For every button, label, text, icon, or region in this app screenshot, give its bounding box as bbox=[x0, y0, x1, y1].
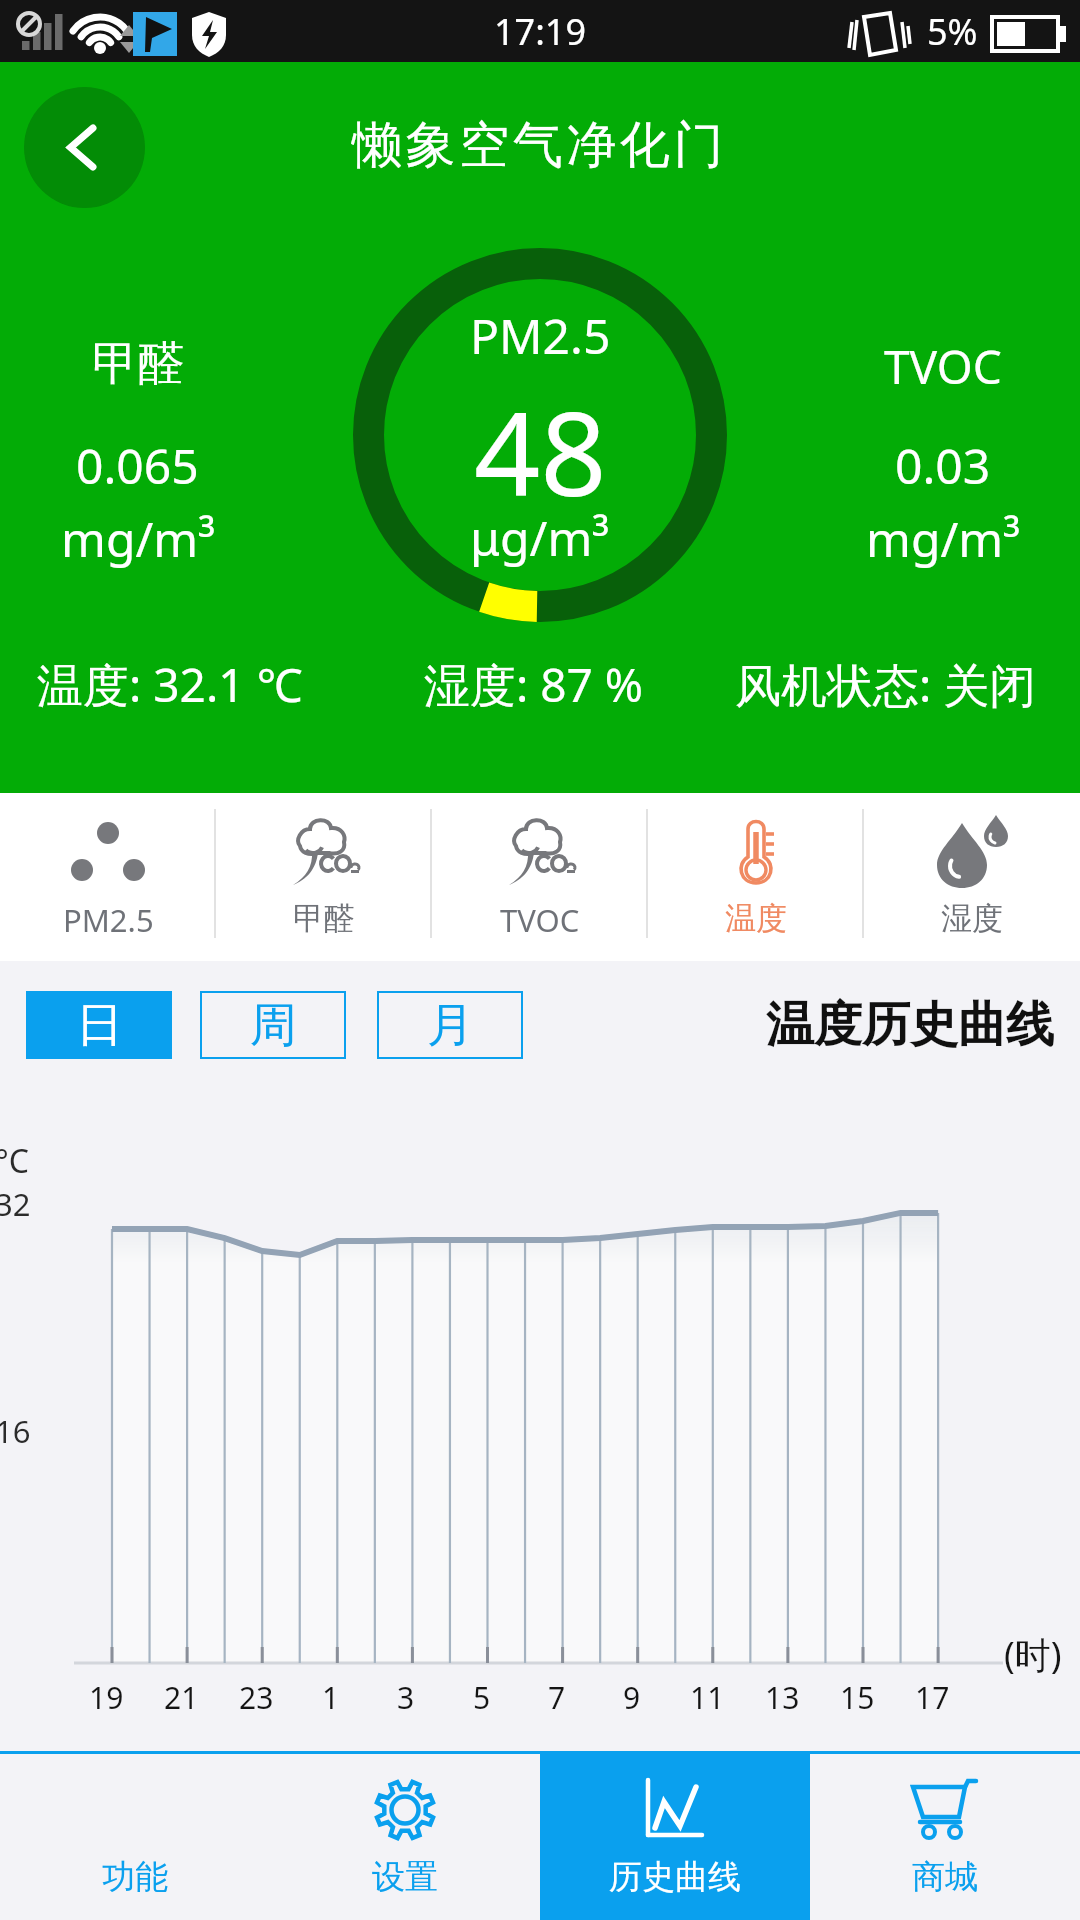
button[interactable]: 功能 bbox=[0, 1754, 270, 1920]
staticText: 16 bbox=[0, 1410, 31, 1452]
staticText: 21 bbox=[164, 1677, 199, 1718]
staticText: TVOC bbox=[884, 335, 1002, 398]
staticText: °C bbox=[0, 1139, 29, 1183]
button[interactable]: 日 bbox=[26, 991, 172, 1059]
button[interactable]: Back bbox=[24, 87, 145, 208]
staticText: PM2.5 bbox=[470, 303, 611, 368]
button[interactable]: 月 bbox=[377, 991, 523, 1059]
staticText: μg/m³ bbox=[470, 505, 610, 570]
button[interactable]: 设置 bbox=[270, 1754, 540, 1920]
staticText: 32 bbox=[0, 1183, 31, 1225]
staticText: 17:19 bbox=[494, 7, 587, 56]
staticText: 9 bbox=[623, 1677, 641, 1718]
button[interactable]: 历史曲线 bbox=[540, 1754, 810, 1920]
staticText: 5% bbox=[927, 7, 978, 56]
staticText: 甲醛 bbox=[293, 899, 355, 938]
staticText: PM2.5 bbox=[63, 899, 154, 941]
staticText: mg/m³ bbox=[61, 506, 215, 571]
staticText: 温度: 32.1 ℃ bbox=[37, 653, 303, 716]
button[interactable]: 商城 bbox=[810, 1754, 1080, 1920]
staticText: (时) bbox=[1004, 1630, 1062, 1679]
button[interactable]: PM2.5 bbox=[0, 793, 216, 961]
staticText: 日 bbox=[76, 996, 123, 1055]
staticText: 3 bbox=[397, 1677, 415, 1718]
button[interactable]: 湿度 bbox=[864, 793, 1080, 961]
staticText: 湿度 bbox=[941, 899, 1003, 938]
staticText: 15 bbox=[840, 1677, 875, 1718]
staticText: 7 bbox=[548, 1677, 566, 1718]
button[interactable]: 甲醛 bbox=[216, 793, 432, 961]
staticText: 19 bbox=[89, 1677, 124, 1718]
staticText: 温度 bbox=[725, 899, 787, 938]
staticText: 0.065 bbox=[76, 433, 199, 498]
staticText: 周 bbox=[250, 996, 297, 1055]
staticText: 17 bbox=[915, 1677, 950, 1718]
staticText: 0.03 bbox=[895, 433, 991, 498]
staticText: 设置 bbox=[372, 1856, 438, 1898]
button[interactable]: 周 bbox=[200, 991, 346, 1059]
staticText: mg/m³ bbox=[866, 506, 1020, 571]
staticText: 11 bbox=[690, 1677, 725, 1718]
staticText: 5 bbox=[473, 1677, 491, 1718]
button[interactable]: 温度 bbox=[648, 793, 864, 961]
staticText: 1 bbox=[322, 1677, 340, 1718]
staticText: TVOC bbox=[500, 899, 580, 941]
staticText: 甲醛 bbox=[92, 335, 184, 393]
staticText: 13 bbox=[765, 1677, 800, 1718]
staticText: 48 bbox=[474, 372, 607, 530]
staticText: 商城 bbox=[912, 1856, 978, 1898]
staticText: 月 bbox=[427, 996, 474, 1055]
button[interactable]: TVOC bbox=[432, 793, 648, 961]
staticText: 功能 bbox=[102, 1856, 168, 1898]
staticText: 懒象空气净化门 bbox=[352, 114, 728, 177]
staticText: 湿度: 87 % bbox=[424, 653, 644, 716]
staticText: 温度历史曲线 bbox=[766, 995, 1054, 1055]
staticText: 23 bbox=[239, 1677, 274, 1718]
staticText: 风机状态: 关闭 bbox=[735, 653, 1036, 716]
staticText: 历史曲线 bbox=[609, 1856, 741, 1898]
